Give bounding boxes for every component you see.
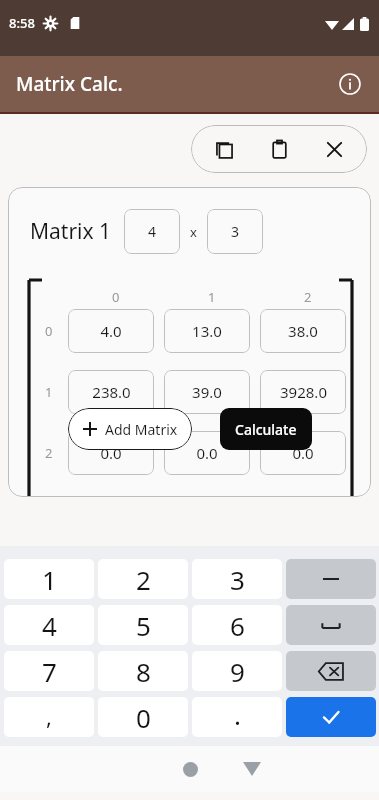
staticText: 3	[230, 562, 245, 597]
button[interactable]: Info	[333, 67, 367, 101]
button[interactable]: Close	[312, 127, 356, 171]
button[interactable]: Function key	[286, 605, 376, 645]
staticText: 238.0	[92, 382, 131, 402]
staticText: Calculate	[235, 420, 297, 439]
button[interactable]: 5	[98, 605, 188, 645]
staticText: 1	[208, 288, 216, 306]
staticText: ,	[46, 701, 52, 731]
button[interactable]: 3928.0	[260, 370, 346, 414]
button[interactable]: Add Matrix	[68, 408, 192, 450]
button[interactable]: Paste	[257, 127, 301, 171]
button[interactable]: Function key	[286, 559, 376, 599]
button[interactable]: Back	[62, 746, 379, 792]
staticText: 6	[230, 608, 245, 643]
button[interactable]: 39.0	[164, 370, 250, 414]
button[interactable]: 4.0	[68, 309, 154, 353]
button[interactable]: 3	[192, 559, 282, 599]
staticText: Matrix 1	[30, 217, 112, 246]
staticText: 0.0	[100, 443, 122, 463]
staticText: 5	[136, 608, 151, 643]
staticText: 0.0	[292, 443, 314, 463]
staticText: Add Matrix	[105, 420, 178, 439]
button[interactable]: 0	[98, 697, 188, 737]
staticText: 0	[45, 322, 53, 340]
staticText: 38.0	[288, 321, 318, 341]
staticText: Matrix Calc.	[16, 71, 123, 97]
staticText: 4	[148, 222, 157, 241]
staticText: .	[234, 697, 241, 731]
staticText: 0.0	[196, 443, 218, 463]
staticText: 2	[136, 562, 151, 597]
button[interactable]: 7	[4, 651, 94, 691]
button[interactable]: Enter	[286, 697, 376, 737]
button[interactable]: ,	[4, 697, 94, 737]
staticText: x	[190, 223, 197, 241]
button[interactable]: 4	[4, 605, 94, 645]
staticText: 13.0	[192, 321, 222, 341]
staticText: 2	[45, 444, 53, 462]
staticText: 2	[304, 288, 312, 306]
button[interactable]: Home	[167, 746, 213, 792]
staticText: 8:58	[9, 14, 35, 32]
button[interactable]: 3	[207, 209, 263, 254]
staticText: 0	[136, 700, 151, 735]
button[interactable]: 13.0	[164, 309, 250, 353]
button[interactable]: 9	[192, 651, 282, 691]
button[interactable]: 0.0	[260, 431, 346, 475]
button[interactable]: 2	[98, 559, 188, 599]
button[interactable]: Function key	[286, 651, 376, 691]
staticText: 7	[42, 654, 57, 689]
staticText: 8	[136, 654, 151, 689]
button[interactable]: 4	[124, 209, 180, 254]
staticText: 0	[112, 288, 120, 306]
staticText: 3	[231, 222, 240, 241]
button[interactable]: 8	[98, 651, 188, 691]
button[interactable]: 238.0	[68, 370, 154, 414]
button[interactable]: .	[192, 697, 282, 737]
button[interactable]: 6	[192, 605, 282, 645]
staticText: 4	[42, 608, 57, 643]
staticText: 39.0	[192, 382, 222, 402]
staticText: 4.0	[100, 321, 122, 341]
button[interactable]: 1	[4, 559, 94, 599]
button[interactable]: Copy	[202, 127, 246, 171]
staticText: 1	[45, 383, 53, 401]
button[interactable]: 0.0	[164, 431, 250, 475]
staticText: 1	[42, 562, 57, 597]
button[interactable]: Calculate	[220, 408, 312, 450]
staticText: 3928.0	[280, 382, 327, 402]
staticText: 9	[230, 654, 245, 689]
button[interactable]: 0.0	[68, 431, 154, 475]
button[interactable]: 38.0	[260, 309, 346, 353]
